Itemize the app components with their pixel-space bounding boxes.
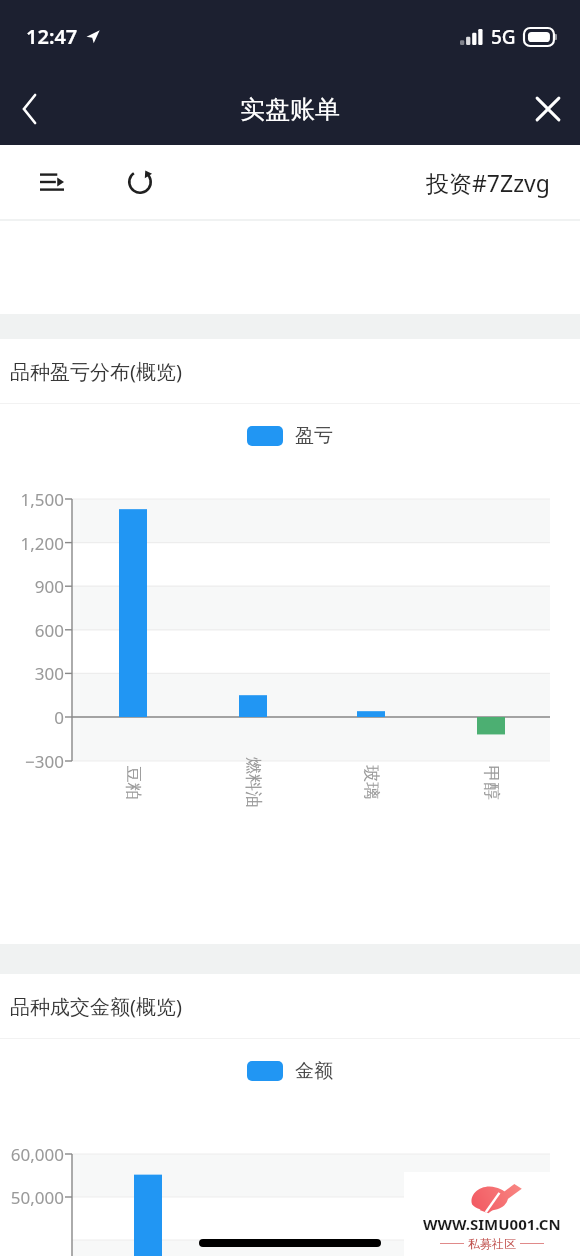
staticText: −300 xyxy=(0,750,64,773)
staticText: 900 xyxy=(0,575,64,598)
staticText: 1,200 xyxy=(0,532,64,555)
staticText: 300 xyxy=(0,662,64,685)
button[interactable]: 投资#7Zzvg xyxy=(426,167,550,198)
staticText: 私募社区 xyxy=(468,1236,516,1251)
staticText: 12:47 xyxy=(26,23,78,50)
staticText: 金额 xyxy=(295,1059,333,1083)
staticText: WWW.SIMU001.CN xyxy=(423,1214,561,1234)
button[interactable]: Refresh xyxy=(120,162,160,202)
staticText: 豆粕 xyxy=(122,765,143,799)
staticText: 0 xyxy=(0,706,64,729)
button[interactable]: Close xyxy=(516,77,580,141)
button[interactable]: Filter list xyxy=(34,164,70,200)
staticText: 600 xyxy=(0,619,64,642)
staticText: 60,000 xyxy=(0,1143,64,1166)
staticText: 盈亏 xyxy=(295,424,333,448)
staticText: 50,000 xyxy=(0,1186,64,1209)
staticText: 燃料油 xyxy=(243,757,264,808)
staticText: 品种盈亏分布(概览) xyxy=(10,358,182,385)
button[interactable]: Back xyxy=(0,79,60,139)
staticText: 甲醇 xyxy=(480,765,501,799)
staticText: 1,500 xyxy=(0,488,64,511)
staticText: 品种成交金额(概览) xyxy=(10,993,182,1020)
staticText: 玻璃 xyxy=(360,765,381,799)
staticText: 实盘账单 xyxy=(240,94,340,125)
staticText: 5G xyxy=(491,24,516,50)
